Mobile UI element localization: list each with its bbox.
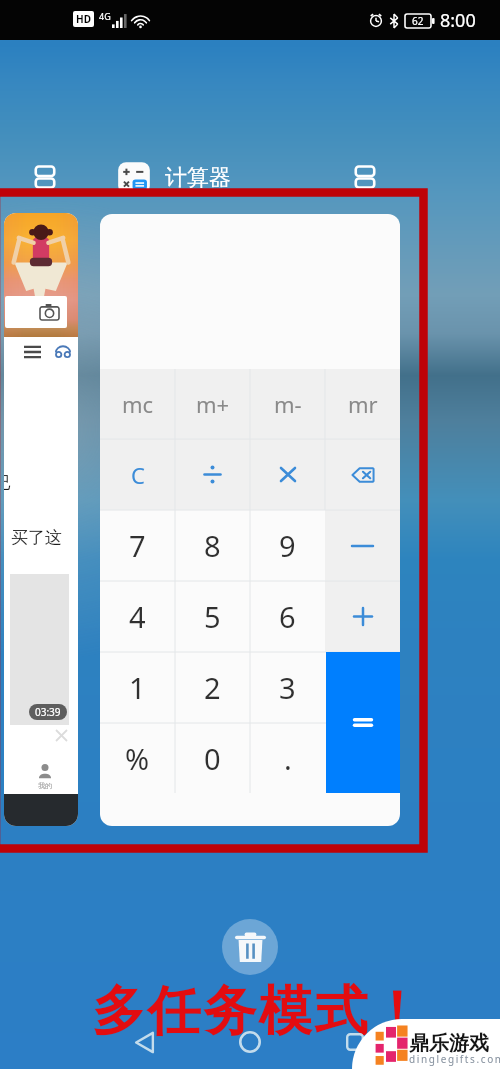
- staticText: 9: [279, 526, 296, 565]
- button[interactable]: 3: [250, 652, 325, 723]
- staticText: m-: [274, 389, 302, 419]
- staticText: HD: [76, 12, 91, 26]
- staticText: 8:00: [440, 8, 476, 33]
- staticText: 3: [279, 668, 296, 707]
- staticText: 0: [204, 739, 221, 778]
- button[interactable]: Home: [232, 1026, 268, 1058]
- button[interactable]: 5: [175, 581, 250, 652]
- staticText: 我的: [38, 781, 52, 790]
- button[interactable]: mc: [100, 369, 175, 439]
- staticText: 7: [129, 526, 146, 565]
- staticText: m+: [196, 389, 230, 419]
- staticText: mc: [122, 389, 154, 419]
- staticText: 62: [412, 14, 424, 28]
- button[interactable]: %: [100, 723, 175, 793]
- button[interactable]: Minus: [325, 510, 400, 581]
- button[interactable]: 1: [100, 652, 175, 723]
- staticText: ，买了这: [4, 527, 62, 548]
- button[interactable]: Plus: [325, 581, 400, 652]
- staticText: 已: [4, 472, 11, 493]
- button[interactable]: 7: [100, 510, 175, 581]
- button[interactable]: 8: [175, 510, 250, 581]
- button[interactable]: 4: [100, 581, 175, 652]
- button[interactable]: .: [250, 723, 325, 793]
- staticText: C: [131, 460, 145, 490]
- button[interactable]: Clear all: [222, 919, 278, 975]
- button[interactable]: mr: [325, 369, 400, 439]
- staticText: 5: [204, 597, 221, 636]
- staticText: 8: [204, 526, 221, 565]
- staticText: 03:39: [35, 705, 61, 719]
- button[interactable]: m+: [175, 369, 250, 439]
- button[interactable]: Backspace: [325, 439, 400, 510]
- button[interactable]: [325, 723, 400, 793]
- button[interactable]: C: [100, 439, 175, 510]
- button[interactable]: [175, 439, 250, 510]
- button[interactable]: [250, 439, 325, 510]
- button[interactable]: m-: [250, 369, 325, 439]
- staticText: 鼎乐游戏: [409, 1031, 489, 1056]
- staticText: .: [284, 739, 292, 778]
- staticText: %: [125, 739, 150, 778]
- button[interactable]: Equals: [326, 652, 400, 793]
- staticText: 4G: [99, 10, 111, 22]
- button[interactable]: 计算器: [116, 160, 231, 196]
- button[interactable]: 9: [250, 510, 325, 581]
- button[interactable]: Split screen right: [348, 160, 382, 194]
- button[interactable]: 0: [175, 723, 250, 793]
- staticText: mr: [348, 389, 378, 419]
- staticText: 6: [279, 597, 296, 636]
- button[interactable]: Camera: [5, 296, 67, 328]
- staticText: 1: [129, 668, 146, 707]
- button[interactable]: Split screen left: [28, 160, 62, 194]
- staticText: 多任务模式！: [92, 978, 426, 1045]
- staticText: 计算器: [165, 164, 231, 192]
- staticText: dinglegifts.com: [409, 1052, 500, 1066]
- button[interactable]: [325, 652, 400, 723]
- staticText: 4: [129, 597, 146, 636]
- button[interactable]: 2: [175, 652, 250, 723]
- button[interactable]: Recents: [337, 1026, 373, 1058]
- button[interactable]: Camera: [4, 213, 78, 826]
- button[interactable]: 6: [250, 581, 325, 652]
- button[interactable]: Back: [126, 1026, 162, 1058]
- staticText: 2: [204, 668, 221, 707]
